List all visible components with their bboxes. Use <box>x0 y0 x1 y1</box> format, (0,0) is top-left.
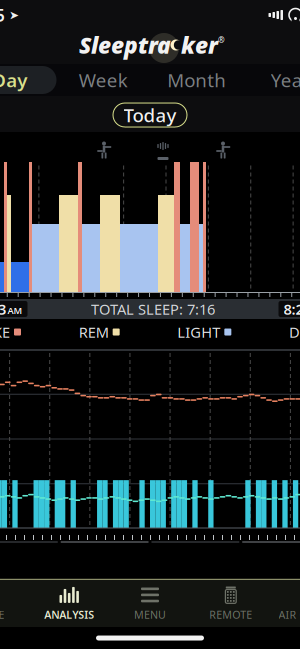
staticText: LIGHT <box>177 322 220 342</box>
button[interactable]: AIR QUALITY <box>271 580 300 627</box>
button[interactable]: Month <box>150 66 243 94</box>
staticText: ® <box>218 35 225 45</box>
staticText: REMOTE <box>209 607 252 622</box>
staticText: REM <box>79 322 109 342</box>
staticText: TOTAL SLEEP: 7:16 <box>91 299 215 319</box>
staticText: Year <box>271 68 300 92</box>
staticText: Week <box>79 68 128 92</box>
staticText: DEEP <box>289 322 300 342</box>
staticText: 8:27 <box>283 299 300 319</box>
staticText: AM <box>7 304 22 317</box>
staticText: MENU <box>134 607 166 622</box>
staticText: Day <box>0 68 27 92</box>
button[interactable]: HOME <box>0 580 29 627</box>
staticText: ker <box>181 30 218 60</box>
staticText: 12:23 <box>0 299 6 319</box>
staticText: Month <box>167 68 226 92</box>
staticText: HOME <box>0 607 4 622</box>
button[interactable]: MENU <box>110 580 190 627</box>
button[interactable]: Year <box>243 66 300 94</box>
button[interactable]: Today <box>113 103 187 127</box>
button[interactable]: Week <box>56 66 150 94</box>
button[interactable]: Day <box>0 66 56 94</box>
staticText: Sleeptra <box>79 30 171 60</box>
button[interactable]: REMOTE <box>190 580 271 627</box>
staticText: 4:15 <box>0 3 5 26</box>
staticText: AIR QUALITY <box>279 607 300 622</box>
staticText: ➤ <box>5 8 19 22</box>
staticText: ANALYSIS <box>44 607 94 622</box>
staticText: AWAKE <box>0 322 10 342</box>
staticText: Today <box>123 103 176 127</box>
button[interactable]: ANALYSIS <box>29 580 110 627</box>
